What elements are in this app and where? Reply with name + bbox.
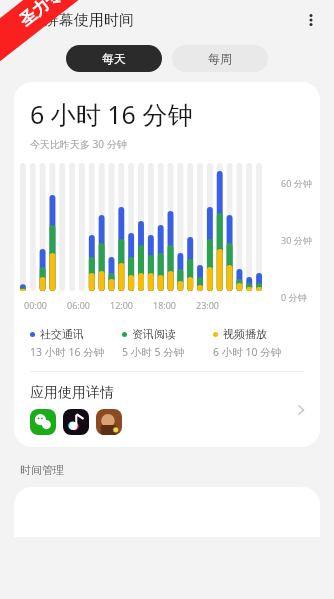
button[interactable]: 每天 — [66, 45, 162, 72]
staticText: 每天 — [102, 51, 126, 66]
staticText: 18:00 — [153, 299, 177, 311]
button[interactable]: 每周 — [172, 45, 268, 72]
staticText: 23:00 — [196, 299, 220, 311]
staticText: 30 分钟 — [281, 234, 312, 246]
staticText: 应用使用详情 — [30, 384, 114, 402]
staticText: 时间管理 — [20, 463, 64, 477]
staticText: 每周 — [208, 51, 232, 66]
staticText: 60 分钟 — [281, 177, 312, 189]
staticText: 13 小时 16 分钟 — [30, 345, 105, 359]
staticText: 资讯阅读 — [132, 327, 176, 341]
staticText: 6 小时 16 分钟 — [30, 97, 193, 131]
button[interactable]: 更多选项 — [294, 3, 328, 37]
staticText: 0 分钟 — [281, 291, 307, 303]
staticText: 06:00 — [67, 299, 91, 311]
button[interactable]: 应用使用详情 — [14, 372, 320, 435]
staticText: 00:00 — [24, 299, 48, 311]
staticText: 视频播放 — [223, 327, 267, 341]
staticText: 5 小时 5 分钟 — [122, 345, 185, 359]
staticText: 社交通讯 — [40, 327, 84, 341]
staticText: 今天比昨天多 30 分钟 — [30, 137, 127, 151]
staticText: 6 小时 10 分钟 — [213, 345, 282, 359]
staticText: 屏幕使用时间 — [44, 11, 134, 30]
staticText: 12:00 — [110, 299, 134, 311]
button[interactable]: 返回 — [6, 3, 40, 37]
staticText: 圣力专测 — [16, 0, 78, 31]
